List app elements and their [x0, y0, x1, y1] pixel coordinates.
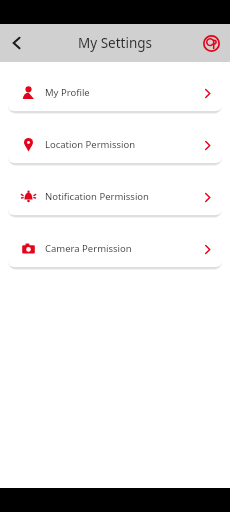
button[interactable]: Camera Permission [8, 230, 222, 267]
staticText: Notification Permission [45, 190, 149, 203]
staticText: My Settings [0, 34, 230, 52]
button[interactable]: My Profile [8, 74, 222, 111]
button[interactable]: App logo [201, 33, 221, 53]
button[interactable]: Location Permission [8, 126, 222, 163]
staticText: Camera Permission [45, 242, 132, 255]
button[interactable]: Back [3, 29, 31, 57]
button[interactable]: Notification Permission [8, 178, 222, 215]
staticText: Location Permission [45, 138, 136, 151]
staticText: My Profile [45, 86, 90, 99]
